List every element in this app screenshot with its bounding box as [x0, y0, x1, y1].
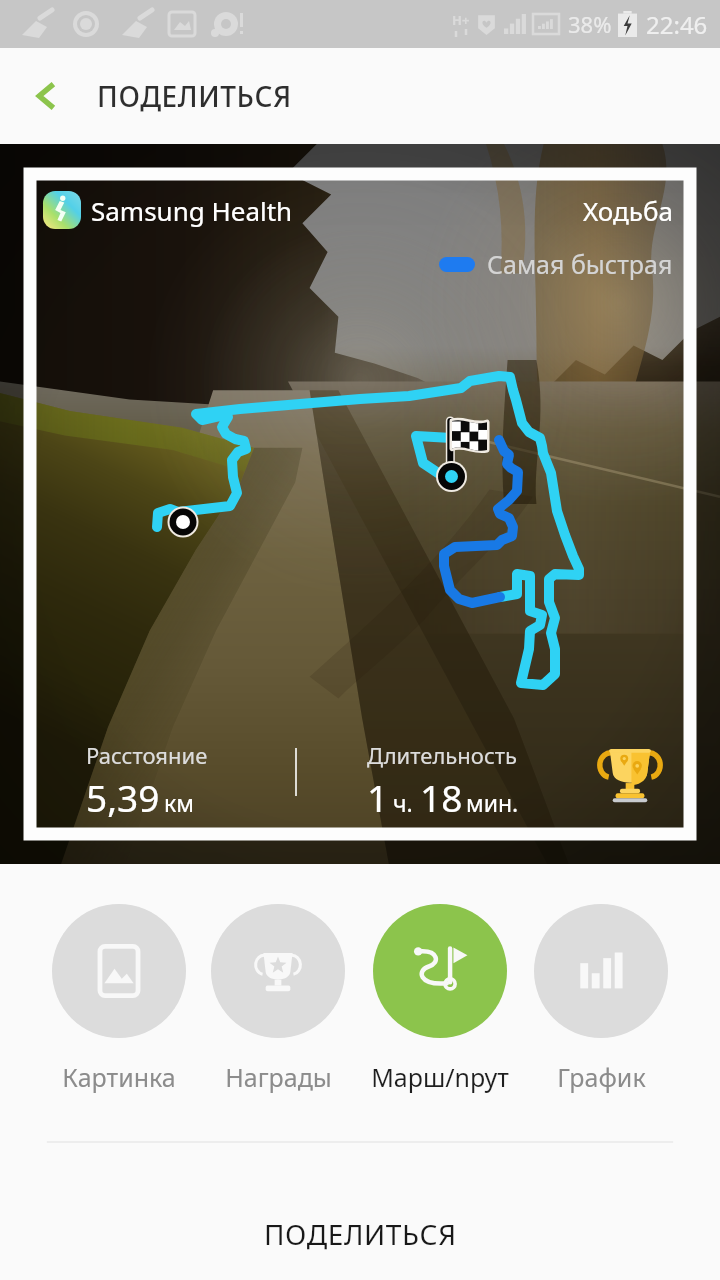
staticText: ПОДЕЛИТЬСЯ — [264, 1215, 457, 1253]
staticText: ПОДЕЛИТЬСЯ — [97, 77, 292, 115]
staticText: ч. — [393, 787, 413, 818]
button[interactable]: Back — [18, 67, 76, 125]
button[interactable]: Награды — [211, 904, 345, 1094]
staticText: 22:46 — [646, 8, 708, 41]
staticText: 1 — [367, 772, 389, 822]
staticText: Самая быстрая — [487, 247, 673, 281]
staticText: H+ — [452, 11, 470, 29]
staticText: Марш/nрут — [371, 1060, 509, 1094]
staticText: 38% — [568, 9, 612, 39]
staticText: Расстояние — [86, 740, 208, 770]
button[interactable]: Марш/nрут — [371, 904, 509, 1094]
button[interactable]: Картинка — [52, 904, 186, 1094]
button[interactable]: График — [534, 904, 668, 1094]
staticText: 5,39 — [86, 772, 160, 822]
staticText: км — [164, 787, 194, 818]
staticText: Длительность — [367, 740, 517, 770]
staticText: Ходьба — [583, 193, 673, 228]
staticText: 18 — [420, 772, 463, 822]
staticText: Картинка — [62, 1060, 176, 1094]
staticText: мин. — [466, 787, 519, 818]
staticText: График — [557, 1060, 646, 1094]
staticText: Награды — [225, 1060, 332, 1094]
staticText: Samsung Health — [91, 193, 293, 228]
button[interactable]: ПОДЕЛИТЬСЯ — [0, 1120, 720, 1280]
